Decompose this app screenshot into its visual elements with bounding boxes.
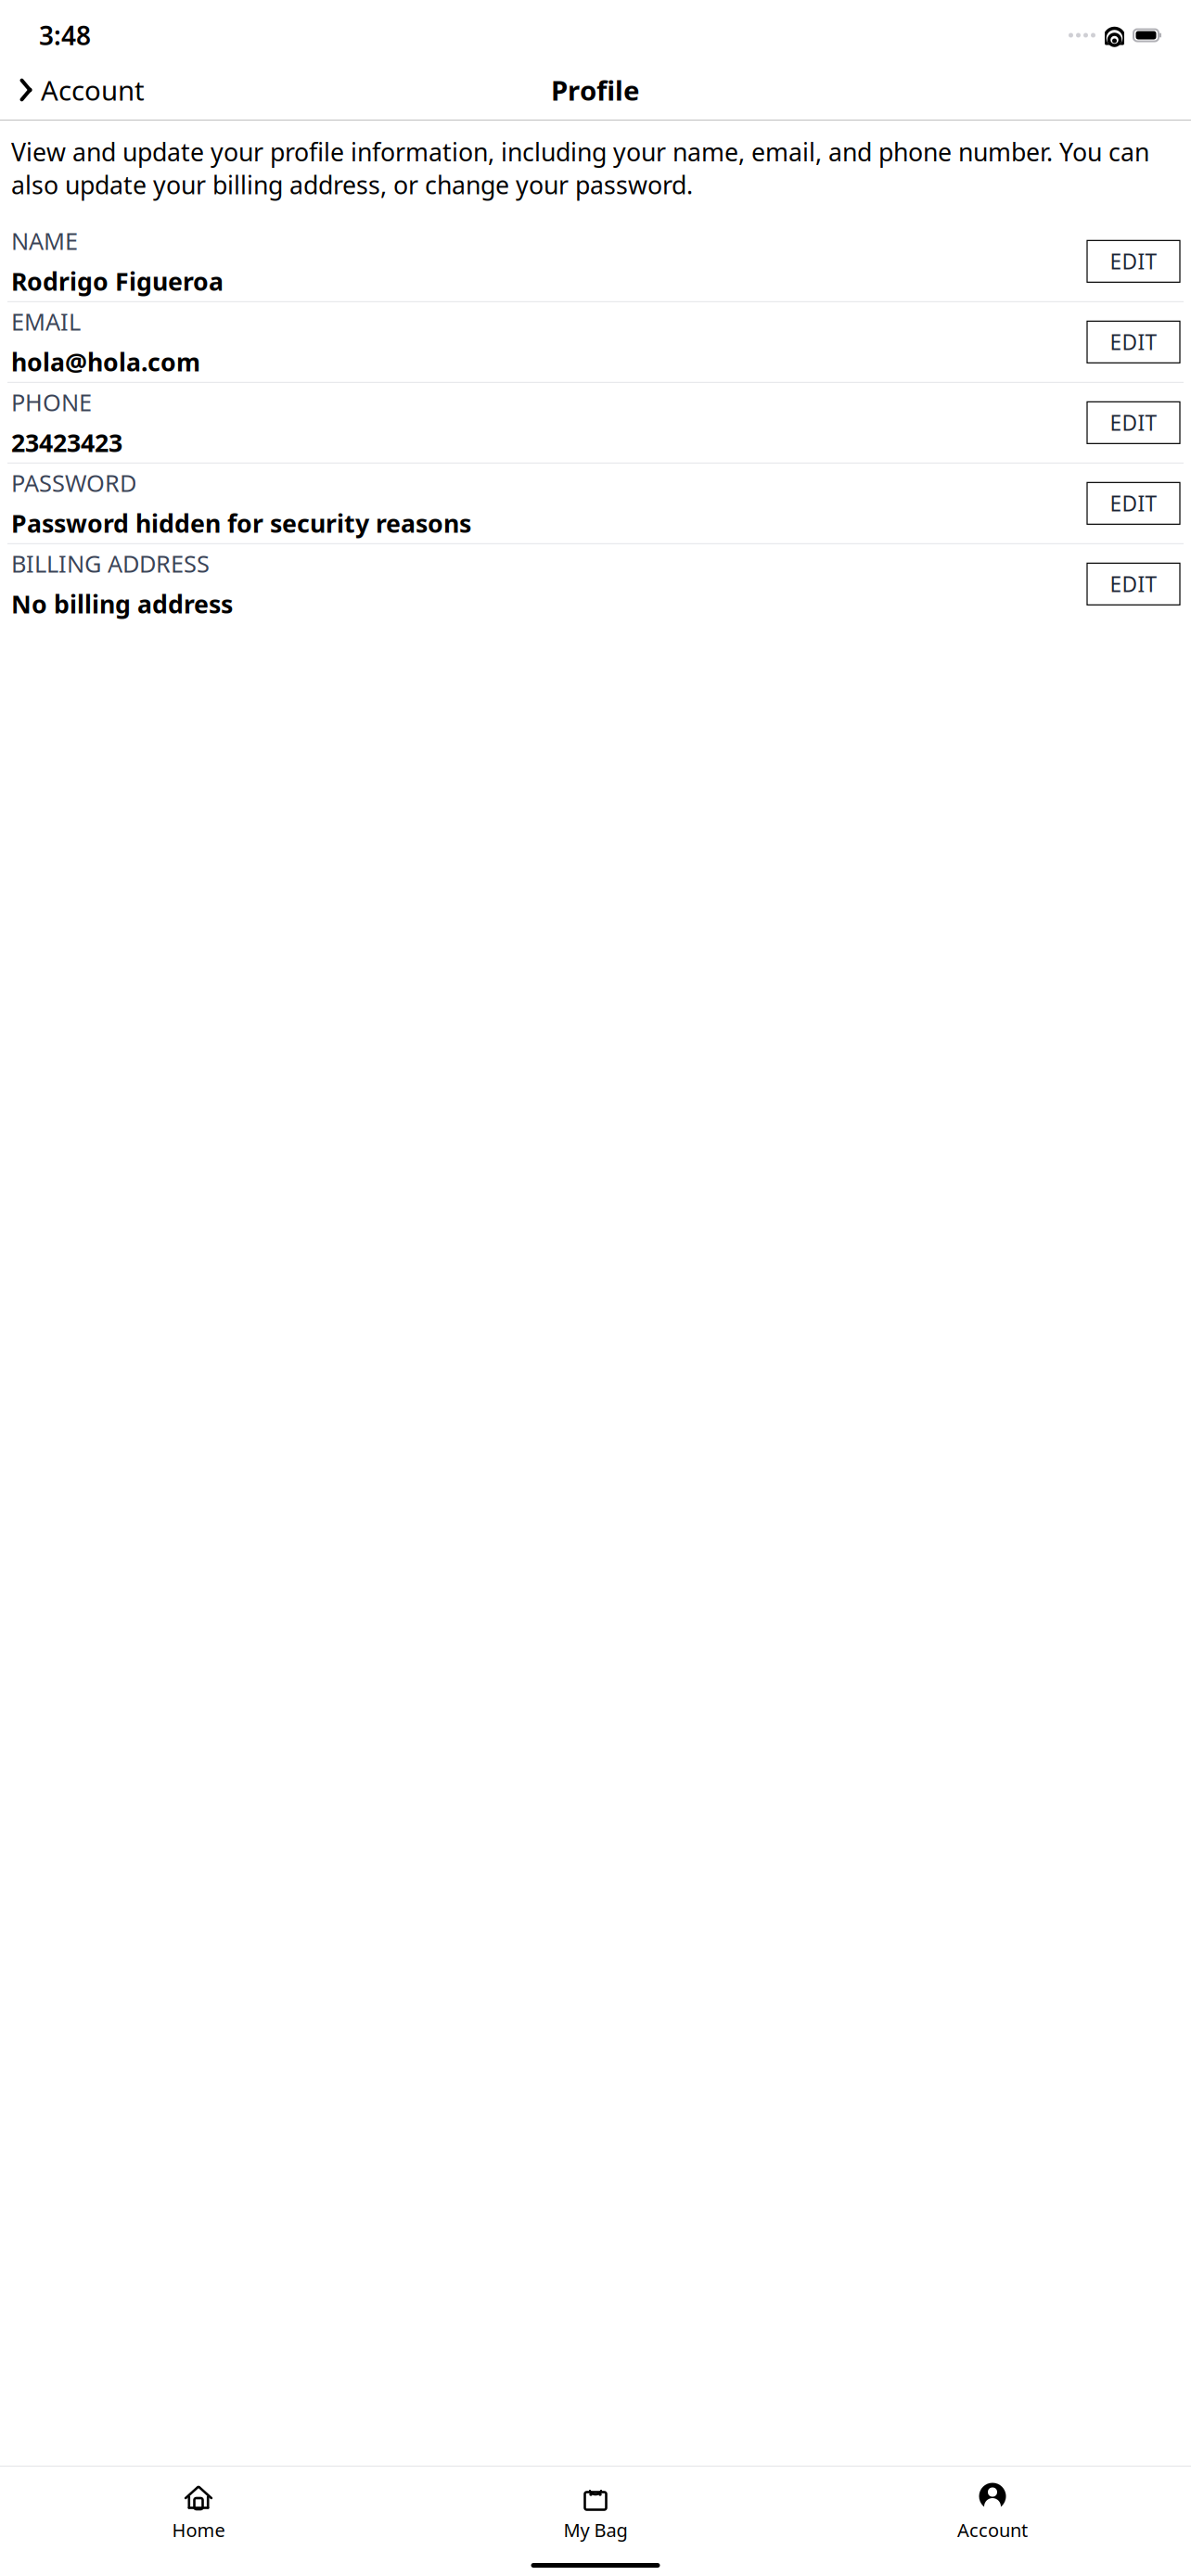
staticText: BILLING ADDRESS <box>11 548 210 579</box>
staticText: My Bag <box>563 2518 628 2542</box>
button[interactable]: Home <box>0 2472 397 2548</box>
staticText: No billing address <box>11 587 233 620</box>
button[interactable]: EDIT <box>1087 402 1180 444</box>
button[interactable]: My Bag <box>397 2472 794 2548</box>
staticText: EMAIL <box>11 306 81 337</box>
button[interactable]: Account <box>7 66 145 114</box>
staticText: Home <box>172 2518 225 2542</box>
button[interactable]: EDIT <box>1087 240 1180 282</box>
staticText: EDIT <box>1110 328 1157 356</box>
staticText: Profile <box>551 72 640 108</box>
button[interactable]: EDIT <box>1087 482 1180 524</box>
staticText: EDIT <box>1110 247 1157 275</box>
staticText: PHONE <box>11 386 92 418</box>
staticText: NAME <box>11 225 78 256</box>
staticText: hola@hola.com <box>11 345 200 378</box>
staticText: Account <box>41 72 145 108</box>
staticText: EDIT <box>1110 409 1157 437</box>
staticText: Account <box>957 2518 1028 2542</box>
staticText: 23423423 <box>11 426 122 459</box>
staticText: EDIT <box>1110 570 1157 598</box>
staticText: View and update your profile information… <box>11 135 1149 201</box>
staticText: Rodrigo Figueroa <box>11 265 224 297</box>
staticText: Password hidden for security reasons <box>11 507 471 539</box>
button[interactable]: EDIT <box>1087 563 1180 605</box>
staticText: 3:48 <box>39 18 91 52</box>
button[interactable]: Account <box>794 2472 1191 2548</box>
staticText: EDIT <box>1110 489 1157 517</box>
staticText: PASSWORD <box>11 467 136 498</box>
button[interactable]: EDIT <box>1087 321 1180 363</box>
